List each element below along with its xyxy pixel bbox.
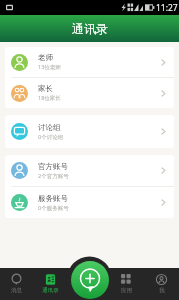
staticText: 0个讨论组	[38, 133, 64, 141]
button[interactable]: 老师	[5, 47, 174, 77]
staticText: 通讯录	[72, 21, 108, 36]
staticText: 老师	[38, 53, 53, 62]
staticText: 18位家长	[38, 94, 61, 102]
button[interactable]: 我	[144, 268, 178, 300]
staticText: 服务账号	[38, 194, 68, 203]
staticText: 应用	[121, 287, 132, 294]
button[interactable]: 家长	[5, 78, 174, 108]
staticText: 讨论组	[38, 123, 61, 132]
button[interactable]: 消息	[0, 268, 33, 300]
staticText: 0个服务账号	[38, 204, 69, 212]
staticText: 官方账号	[38, 162, 68, 171]
button[interactable]: 官方账号	[5, 155, 174, 186]
staticText: 2个官方账号	[38, 172, 69, 180]
staticText: 消息	[11, 287, 22, 294]
staticText: 我	[159, 287, 165, 294]
staticText: 家长	[38, 84, 53, 93]
button[interactable]: New chat	[71, 261, 109, 299]
button[interactable]: 服务账号	[5, 187, 174, 218]
button[interactable]: 通讯录	[33, 268, 67, 300]
staticText: 通讯录	[42, 287, 59, 294]
button[interactable]: 应用	[109, 268, 143, 300]
staticText: 13位老师	[38, 63, 61, 71]
button[interactable]: 讨论组	[5, 115, 174, 148]
staticText: 11:27	[156, 2, 178, 14]
